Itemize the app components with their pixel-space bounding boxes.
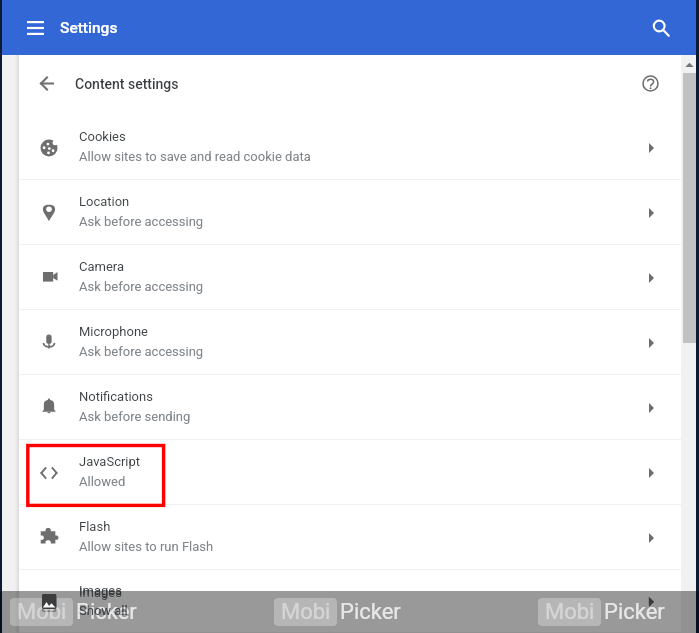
staticText: Picker <box>340 599 401 625</box>
staticText: Show all <box>79 603 128 618</box>
button[interactable]: Location <box>19 180 681 245</box>
staticText: Flash <box>79 519 111 534</box>
staticText: Show all <box>79 603 128 618</box>
button[interactable]: Notifications <box>19 375 681 440</box>
staticText: Picker <box>604 599 665 625</box>
staticText: Allow sites to run Flash <box>79 539 214 554</box>
staticText: Settings <box>60 19 118 37</box>
button[interactable]: Cookies <box>19 115 681 180</box>
button[interactable]: Microphone <box>19 310 681 375</box>
staticText: Ask before sending <box>79 409 191 424</box>
staticText: Camera <box>79 259 125 274</box>
staticText: Notifications <box>79 389 153 404</box>
staticText: Picker <box>76 599 137 625</box>
staticText: Images <box>79 585 122 600</box>
button[interactable]: Back <box>19 55 75 115</box>
button[interactable]: JavaScript <box>19 440 681 505</box>
button[interactable]: Images <box>19 570 681 633</box>
staticText: Allow sites to save and read cookie data <box>79 149 311 164</box>
staticText: JavaScript <box>79 454 141 469</box>
staticText: Mobi <box>17 599 67 625</box>
button[interactable]: Help <box>630 65 670 105</box>
staticText: Images <box>79 583 122 598</box>
staticText: Ask before accessing <box>79 344 204 359</box>
button[interactable]: Menu <box>27 21 44 35</box>
button[interactable]: Camera <box>19 245 681 310</box>
staticText: Cookies <box>79 129 126 144</box>
button[interactable]: Flash <box>19 505 681 570</box>
staticText: Ask before accessing <box>79 214 204 229</box>
staticText: Microphone <box>79 324 148 339</box>
staticText: Ask before accessing <box>79 279 204 294</box>
staticText: Mobi <box>545 599 595 625</box>
button[interactable]: Search <box>644 11 678 45</box>
staticText: Mobi <box>281 599 331 625</box>
staticText: Content settings <box>75 76 179 92</box>
staticText: Location <box>79 194 130 209</box>
staticText: Allowed <box>79 474 126 489</box>
